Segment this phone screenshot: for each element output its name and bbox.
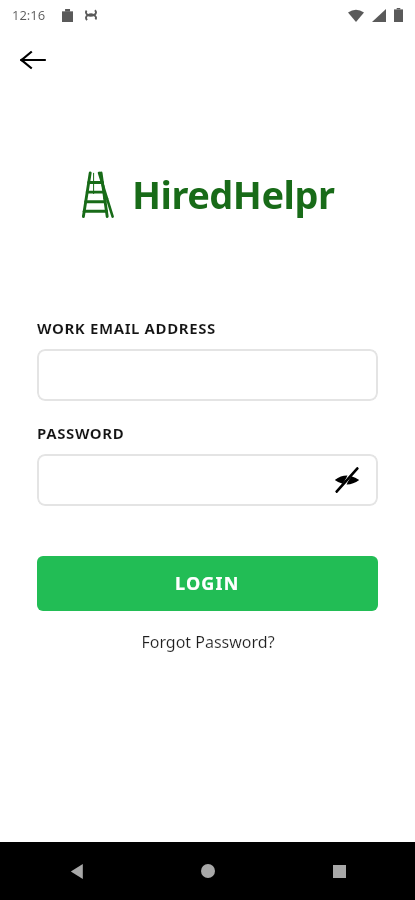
button[interactable]: Home: [188, 851, 228, 891]
button[interactable]: Show password: [330, 463, 364, 497]
staticText: PASSWORD: [37, 423, 125, 443]
button[interactable]: Back: [10, 37, 56, 83]
staticText: LOGIN: [175, 571, 240, 596]
staticText: HiredHelpr: [132, 168, 335, 220]
button[interactable]: [37, 349, 378, 401]
staticText: Forgot Password?: [141, 631, 275, 653]
button[interactable]: Show password: [37, 454, 378, 506]
staticText: WORK EMAIL ADDRESS: [37, 318, 216, 338]
button[interactable]: Back: [56, 851, 96, 891]
staticText: 12:16: [12, 6, 46, 24]
button[interactable]: Recent apps: [319, 851, 359, 891]
button[interactable]: LOGIN: [37, 556, 378, 611]
button[interactable]: Forgot Password?: [133, 627, 283, 657]
